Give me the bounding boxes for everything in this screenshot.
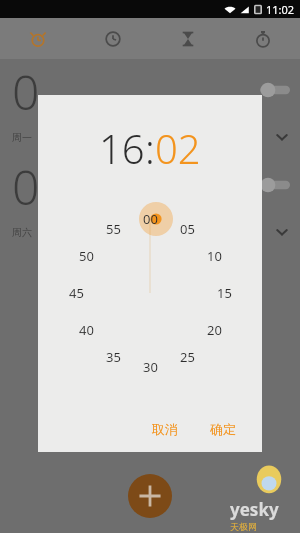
button[interactable]: 02: [155, 121, 201, 175]
staticText: 15: [217, 284, 232, 302]
button[interactable]: Clock: [75, 18, 150, 59]
staticText: 35: [106, 348, 121, 366]
staticText: yesky: [230, 498, 279, 521]
staticText: 25: [180, 348, 195, 366]
button[interactable]: Stopwatch: [225, 18, 300, 59]
staticText: 02: [155, 121, 201, 175]
button[interactable]: Expand: [274, 129, 290, 145]
button[interactable]: Toggle alarm: [260, 177, 290, 193]
staticText: 0: [12, 59, 40, 120]
button[interactable]: Alarm: [0, 18, 75, 59]
staticText: 确定: [210, 421, 236, 437]
button[interactable]: Expand: [274, 224, 290, 240]
staticText: 16: [99, 121, 145, 175]
staticText: 天极网: [230, 521, 257, 532]
staticText: 05: [180, 220, 195, 238]
staticText: 10: [207, 247, 222, 265]
staticText: 20: [207, 321, 222, 339]
staticText: 40: [79, 321, 94, 339]
button[interactable]: Add alarm: [128, 474, 172, 518]
staticText: 周六: [12, 226, 32, 239]
staticText: 30: [143, 358, 158, 376]
button[interactable]: Toggle alarm: [260, 82, 290, 98]
button[interactable]: 16: [99, 121, 145, 175]
staticText: 0: [12, 154, 40, 215]
staticText: 45: [69, 284, 84, 302]
staticText: :: [145, 121, 155, 175]
staticText: 取消: [152, 421, 178, 437]
staticText: 00: [143, 210, 158, 228]
staticText: 周一: [12, 131, 32, 144]
button[interactable]: 取消: [142, 415, 188, 443]
staticText: 55: [106, 220, 121, 238]
button[interactable]: 确定: [200, 415, 246, 443]
staticText: 11:02: [266, 2, 295, 17]
button[interactable]: Timer: [150, 18, 225, 59]
staticText: 50: [79, 247, 94, 265]
